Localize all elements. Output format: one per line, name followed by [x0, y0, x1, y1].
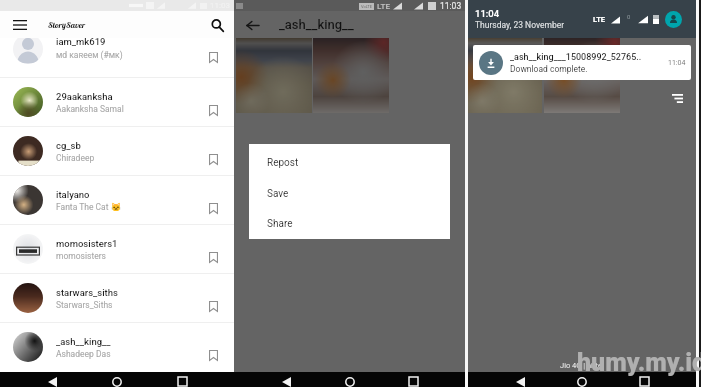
staticText: Share [267, 218, 293, 230]
button[interactable]: Home [574, 377, 590, 387]
button[interactable]: Repost [249, 147, 450, 178]
button[interactable]: iam_mk619 [0, 38, 234, 68]
button[interactable]: _ash__king__ [0, 323, 234, 371]
staticText: Thursday, 23 November [475, 20, 565, 30]
staticText: 29aakanksha [56, 91, 113, 102]
button[interactable]: cg_sb [0, 127, 234, 175]
button[interactable]: Home [342, 377, 358, 387]
button[interactable]: Share [249, 209, 450, 239]
staticText: momosisters1 [56, 238, 118, 249]
button[interactable]: Save [203, 345, 223, 365]
button[interactable]: Save [203, 247, 223, 267]
staticText: VoLTE [361, 4, 373, 9]
button[interactable]: Search [205, 13, 229, 37]
button[interactable]: Save [203, 100, 223, 120]
button[interactable]: Recents [636, 377, 652, 387]
staticText: Ashadeep Das [56, 349, 111, 359]
button[interactable]: _ash__king___15008992_52765.. [473, 45, 691, 80]
button[interactable]: Save [203, 198, 223, 218]
staticText: humy.my.id [577, 348, 701, 377]
button[interactable]: 29aakanksha [0, 78, 234, 126]
button[interactable]: Back [512, 377, 528, 387]
button[interactable]: momosisters1 [0, 225, 234, 273]
staticText: LTE [377, 2, 390, 11]
button[interactable]: Save [203, 47, 223, 67]
button[interactable]: Menu [7, 12, 33, 38]
button[interactable]: Save [203, 149, 223, 169]
button[interactable]: Back [44, 377, 60, 387]
staticText: starwars_siths [56, 287, 118, 298]
button[interactable]: Back [241, 14, 263, 36]
staticText: italyano [56, 189, 90, 200]
staticText: 11:03 [440, 1, 462, 11]
button[interactable]: Account [665, 11, 682, 28]
staticText: cg_sb [56, 140, 81, 151]
staticText: _ash__king__ [56, 336, 111, 347]
button[interactable]: Back [278, 377, 294, 387]
button[interactable]: Quick settings [668, 89, 686, 107]
staticText: Save [267, 188, 289, 200]
staticText: Fanta The Cat 🐱 [56, 202, 122, 212]
staticText: iam_mk619 [56, 38, 106, 47]
staticText: Chiradeep [56, 153, 95, 163]
staticText: 0 [627, 13, 631, 20]
staticText: 11:04 [668, 59, 686, 67]
staticText: Repost [267, 157, 299, 169]
staticText: мԁ каʀеем (#мк) [56, 49, 123, 61]
staticText: _ash__king___15008992_52765.. [510, 52, 642, 63]
staticText: Aakanksha Samal [56, 104, 124, 114]
staticText: Download complete. [510, 64, 588, 74]
button[interactable]: starwars_siths [0, 274, 234, 322]
button[interactable]: Recents [405, 377, 421, 387]
button[interactable]: italyano [0, 176, 234, 224]
button[interactable]: Save [249, 178, 450, 209]
staticText: LTE [593, 15, 606, 24]
staticText: Starwars_Siths [56, 300, 113, 310]
button[interactable]: Recents [174, 377, 190, 387]
staticText: momosisters [56, 251, 106, 261]
staticText: _ash__king__ [279, 17, 354, 32]
staticText: StorySaver [48, 19, 86, 30]
button[interactable]: Save [203, 296, 223, 316]
staticText: Jio 4G | airtel [560, 361, 604, 370]
button[interactable]: Home [109, 377, 125, 387]
staticText: 11:04 [475, 8, 500, 19]
